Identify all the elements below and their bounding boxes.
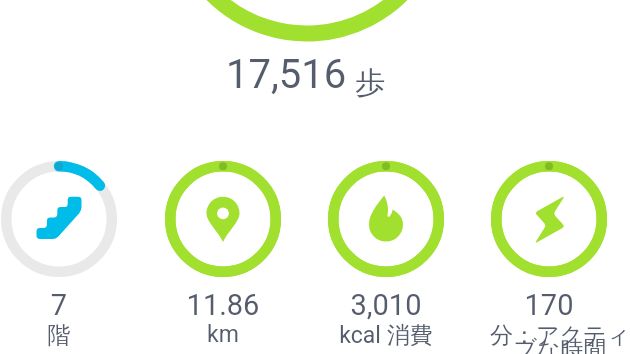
button[interactable]: Active minutes: [474, 161, 624, 354]
staticText: kcal 消費: [311, 321, 461, 350]
staticText: 170: [474, 288, 624, 322]
staticText: 階: [0, 321, 134, 350]
button[interactable]: Distance: [148, 161, 298, 354]
staticText: 17,516: [226, 51, 347, 98]
staticText: 分：アクティブな時間: [485, 321, 630, 354]
staticText: 7: [0, 288, 134, 322]
button[interactable]: Floors climbed: [0, 161, 134, 354]
staticText: 11.86: [148, 288, 298, 322]
button[interactable]: Calories: [311, 161, 461, 354]
staticText: 歩: [355, 64, 385, 102]
staticText: 3,010: [311, 288, 461, 322]
staticText: km: [148, 321, 298, 348]
